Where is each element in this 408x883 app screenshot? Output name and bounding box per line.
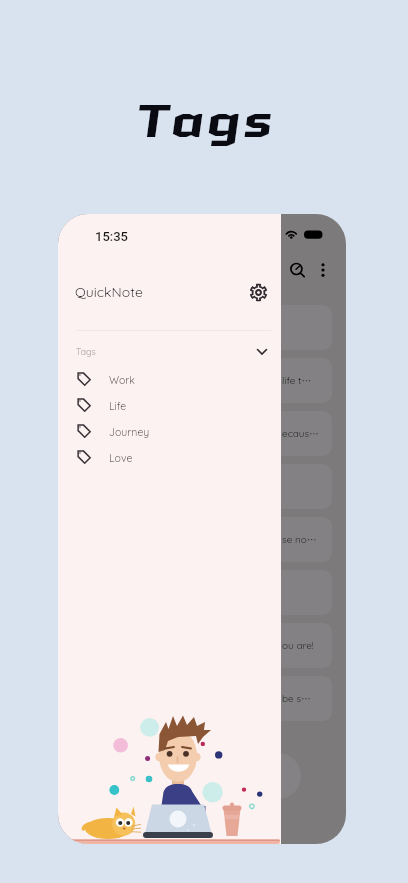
button[interactable]: Work <box>58 366 281 392</box>
staticText: Work <box>109 373 135 386</box>
button[interactable] <box>70 570 332 615</box>
staticText: Tags <box>76 346 96 357</box>
button[interactable]: ou are! <box>70 623 332 668</box>
staticText: life t⋯ <box>282 374 312 387</box>
button[interactable]: Settings <box>243 280 273 304</box>
button[interactable] <box>70 305 332 350</box>
staticText: se no⋯ <box>282 533 317 546</box>
button[interactable]: Add note <box>255 753 301 799</box>
button[interactable]: Journey <box>58 418 281 444</box>
button[interactable]: life t⋯ <box>70 358 332 403</box>
staticText: QuickNote <box>75 283 143 301</box>
staticText: Life <box>109 399 127 412</box>
staticText: be s⋯ <box>282 692 312 705</box>
button[interactable]: se no⋯ <box>70 517 332 562</box>
staticText: Love <box>109 451 133 464</box>
staticText: 15:35 <box>95 229 128 244</box>
button[interactable]: Life <box>58 392 281 418</box>
button[interactable] <box>70 464 332 509</box>
button[interactable]: ecaus⋯ <box>70 411 332 456</box>
button[interactable]: Search <box>284 256 312 284</box>
staticText: Tags <box>134 88 273 152</box>
button[interactable]: be s⋯ <box>70 676 332 721</box>
staticText: ou are! <box>282 639 314 652</box>
staticText: ecaus⋯ <box>282 427 320 440</box>
staticText: Journey <box>109 425 150 438</box>
button[interactable]: Love <box>58 444 281 470</box>
button[interactable]: More options <box>312 259 334 281</box>
